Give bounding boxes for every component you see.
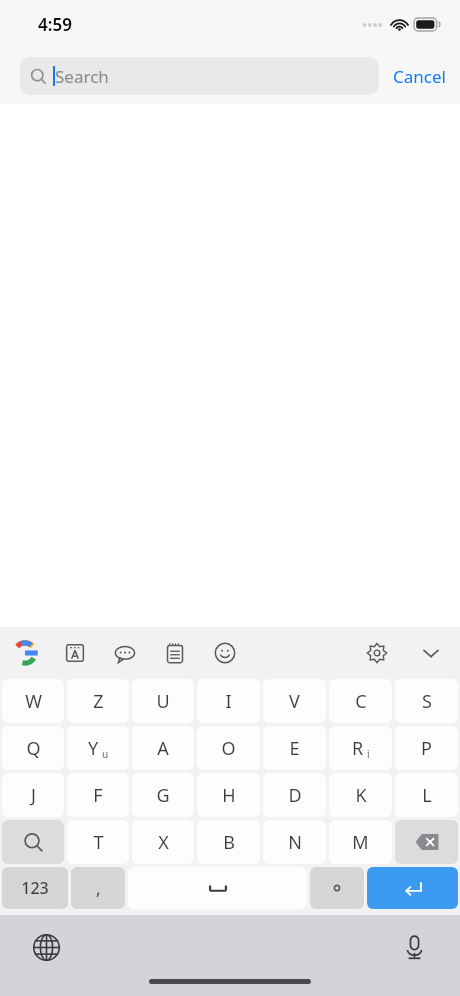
staticText: 123 bbox=[21, 877, 49, 899]
button[interactable]: R bbox=[329, 726, 392, 770]
button[interactable]: M bbox=[329, 820, 392, 864]
button[interactable]: V bbox=[263, 679, 326, 723]
staticText: M bbox=[352, 830, 369, 855]
button[interactable]: Period bbox=[310, 867, 364, 909]
button[interactable]: Search bbox=[20, 57, 379, 95]
button[interactable]: Y bbox=[67, 726, 129, 770]
staticText: T bbox=[93, 830, 104, 855]
staticText: H bbox=[222, 783, 236, 808]
button[interactable]: C bbox=[329, 679, 392, 723]
staticText: E bbox=[289, 736, 300, 761]
button[interactable]: 123 bbox=[2, 867, 68, 909]
button[interactable]: A bbox=[132, 726, 194, 770]
staticText: Cancel bbox=[393, 65, 446, 88]
staticText: Q bbox=[26, 736, 41, 761]
staticText: O bbox=[221, 736, 236, 761]
button[interactable]: N bbox=[263, 820, 326, 864]
button[interactable]: Stickers bbox=[110, 638, 140, 668]
staticText: L bbox=[422, 783, 432, 808]
button[interactable]: Space bbox=[128, 867, 307, 909]
button[interactable]: Q bbox=[2, 726, 64, 770]
staticText: 4:59 bbox=[38, 13, 72, 36]
button[interactable]: U bbox=[132, 679, 194, 723]
staticText: N bbox=[288, 830, 302, 855]
button[interactable]: H bbox=[197, 773, 260, 817]
button[interactable]: E bbox=[263, 726, 326, 770]
staticText: , bbox=[96, 876, 101, 901]
button[interactable]: F bbox=[67, 773, 129, 817]
button[interactable]: Google Assistant bbox=[10, 638, 40, 668]
button[interactable]: Backspace bbox=[395, 820, 458, 864]
button[interactable]: Search bbox=[2, 820, 64, 864]
staticText: F bbox=[93, 783, 103, 808]
staticText: J bbox=[31, 783, 36, 808]
staticText: X bbox=[158, 830, 169, 855]
staticText: U bbox=[156, 689, 170, 714]
button[interactable]: D bbox=[263, 773, 326, 817]
button[interactable]: K bbox=[329, 773, 392, 817]
staticText: Search bbox=[55, 65, 109, 88]
staticText: R bbox=[352, 736, 364, 761]
staticText: S bbox=[422, 689, 432, 714]
staticText: C bbox=[355, 689, 367, 714]
button[interactable]: P bbox=[395, 726, 458, 770]
button[interactable]: Enter bbox=[367, 867, 458, 909]
button[interactable]: O bbox=[197, 726, 260, 770]
button[interactable]: I bbox=[197, 679, 260, 723]
button[interactable]: S bbox=[395, 679, 458, 723]
staticText: G bbox=[156, 783, 170, 808]
button[interactable]: , bbox=[71, 867, 125, 909]
staticText: i bbox=[367, 747, 370, 761]
staticText: D bbox=[288, 783, 302, 808]
staticText: W bbox=[25, 689, 42, 714]
button[interactable]: Translate bbox=[60, 638, 90, 668]
button[interactable]: Z bbox=[67, 679, 129, 723]
button[interactable]: J bbox=[2, 773, 64, 817]
button[interactable]: W bbox=[2, 679, 64, 723]
button[interactable]: Cancel bbox=[393, 59, 446, 94]
button[interactable]: B bbox=[197, 820, 260, 864]
button[interactable]: Change language bbox=[26, 927, 66, 967]
button[interactable]: Clipboard bbox=[160, 638, 190, 668]
button[interactable]: X bbox=[132, 820, 194, 864]
button[interactable]: L bbox=[395, 773, 458, 817]
button[interactable]: Settings bbox=[362, 638, 392, 668]
staticText: A bbox=[157, 736, 169, 761]
staticText: Y bbox=[88, 736, 99, 761]
button[interactable]: Voice input bbox=[394, 927, 434, 967]
staticText: Z bbox=[93, 689, 104, 714]
button[interactable]: Hide keyboard bbox=[416, 638, 446, 668]
staticText: K bbox=[355, 783, 367, 808]
staticText: B bbox=[223, 830, 235, 855]
button[interactable]: G bbox=[132, 773, 194, 817]
button[interactable]: T bbox=[67, 820, 129, 864]
staticText: P bbox=[421, 736, 432, 761]
staticText: I bbox=[225, 689, 232, 714]
staticText: u bbox=[102, 747, 109, 761]
button[interactable]: Emoji bbox=[210, 638, 240, 668]
staticText: V bbox=[289, 689, 300, 714]
